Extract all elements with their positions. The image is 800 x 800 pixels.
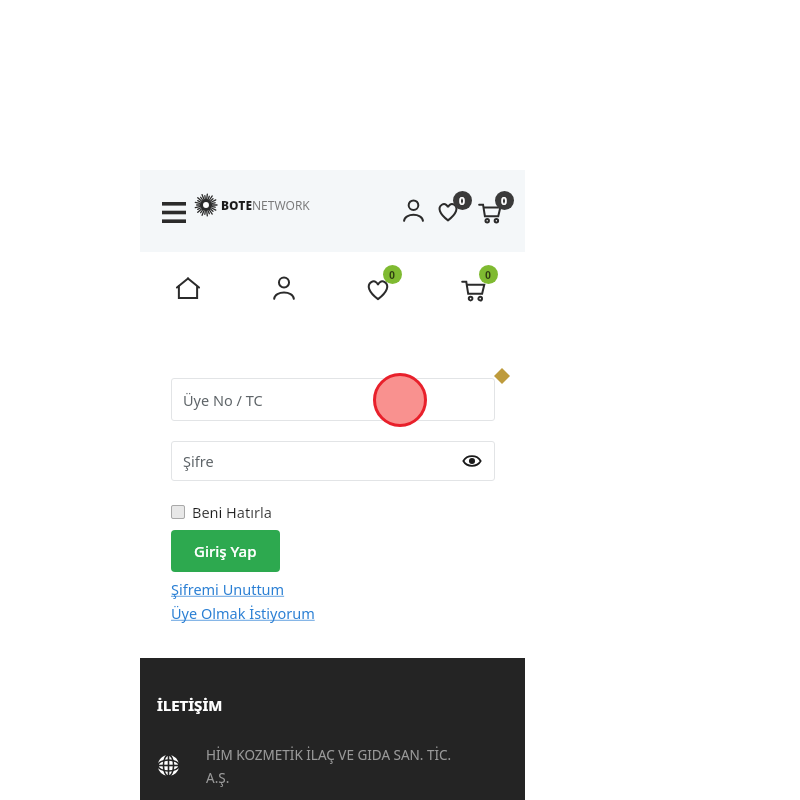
button[interactable]: Menu bbox=[152, 190, 196, 234]
staticText: 0 bbox=[485, 268, 492, 282]
button[interactable]: Şifremi Unuttum bbox=[171, 579, 285, 601]
button[interactable]: BOTE bbox=[195, 194, 310, 216]
button[interactable]: Show password bbox=[461, 450, 483, 472]
staticText: Giriş Yap bbox=[194, 541, 257, 561]
staticText: NETWORK bbox=[252, 197, 310, 213]
staticText: Beni Hatırla bbox=[192, 502, 272, 522]
button[interactable]: Favorites bbox=[357, 264, 405, 312]
staticText: Şifremi Unuttum bbox=[171, 579, 285, 599]
button[interactable]: Üye No / TC bbox=[171, 378, 495, 421]
staticText: 0 bbox=[459, 194, 466, 208]
button[interactable]: Account bbox=[393, 190, 433, 230]
button[interactable]: Şifre bbox=[171, 441, 495, 481]
staticText: 0 bbox=[389, 268, 396, 282]
staticText: BOTE bbox=[221, 197, 252, 213]
button[interactable]: Account bbox=[260, 264, 308, 312]
staticText: HİM KOZMETİK İLAÇ VE GIDA SAN. TİC. A.Ş. bbox=[206, 746, 452, 787]
staticText: 0 bbox=[501, 194, 508, 208]
staticText: İLETİŞİM bbox=[157, 695, 223, 715]
staticText: Üye No / TC bbox=[183, 390, 263, 410]
button[interactable]: Home bbox=[164, 264, 212, 312]
button[interactable]: Favorites bbox=[434, 190, 476, 232]
button[interactable]: Giriş Yap bbox=[171, 530, 280, 572]
button[interactable]: Beni Hatırla bbox=[171, 498, 272, 526]
button[interactable]: Üye Olmak İstiyorum bbox=[171, 603, 315, 625]
staticText: Şifre bbox=[183, 451, 214, 471]
staticText: Üye Olmak İstiyorum bbox=[171, 603, 315, 623]
button[interactable]: Cart bbox=[476, 190, 518, 232]
button[interactable]: Cart bbox=[453, 264, 501, 312]
